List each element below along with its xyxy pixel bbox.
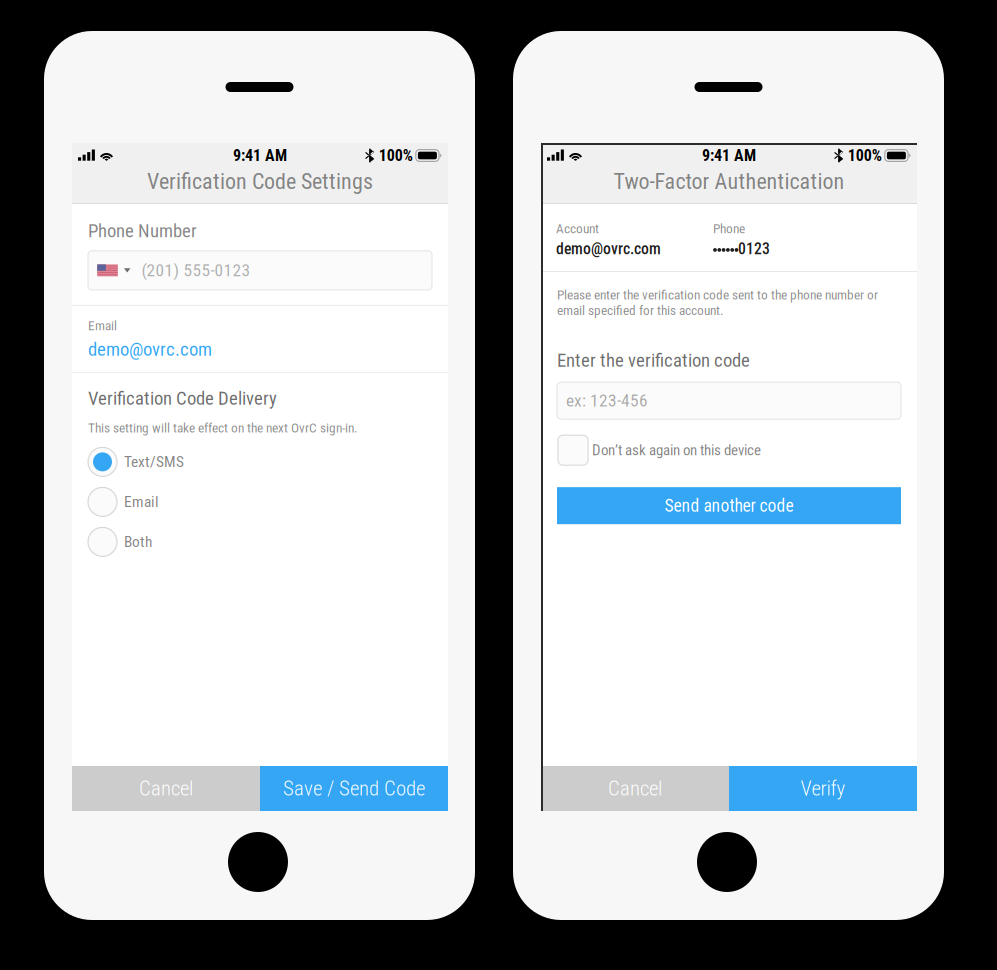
button[interactable]: Both: [88, 522, 432, 562]
staticText: Cancel: [139, 776, 193, 801]
staticText: Save / Send Code: [283, 776, 425, 801]
staticText: 0123: [738, 240, 770, 258]
staticText: Cancel: [608, 776, 662, 801]
staticText: (201) 555-0123: [141, 260, 250, 280]
staticText: Phone: [713, 221, 745, 237]
staticText: Email: [88, 318, 117, 333]
staticText: Verification Code Delivery: [88, 387, 277, 409]
button[interactable]: Don’t ask again on this device: [557, 435, 901, 465]
staticText: 100%: [379, 146, 413, 165]
button[interactable]: Verify: [729, 766, 917, 811]
staticText: Enter the verification code: [557, 349, 750, 371]
staticText: Phone Number: [88, 220, 197, 242]
staticText: ex: 123-456: [566, 390, 648, 411]
staticText: Email: [124, 493, 159, 511]
button[interactable]: Email: [88, 482, 432, 522]
staticText: Two-Factor Authentication: [613, 169, 844, 194]
staticText: Send another code: [664, 495, 793, 516]
staticText: Verification Code Settings: [147, 169, 373, 194]
staticText: Both: [124, 533, 152, 551]
staticText: This setting will take effect on the nex…: [88, 420, 358, 436]
staticText: Text/SMS: [124, 453, 184, 471]
staticText: 100%: [848, 146, 882, 165]
staticText: Account: [556, 221, 599, 237]
staticText: Verify: [800, 776, 845, 801]
staticText: demo@ovrc.com: [556, 240, 661, 258]
button[interactable]: Text/SMS: [88, 442, 432, 482]
staticText: demo@ovrc.com: [88, 338, 212, 360]
button[interactable]: Cancel: [72, 766, 260, 811]
staticText: Don’t ask again on this device: [592, 441, 761, 459]
staticText: 9:41 AM: [702, 146, 756, 165]
staticText: Please enter the verification code sent …: [557, 287, 878, 318]
button[interactable]: Cancel: [541, 766, 729, 811]
button[interactable]: Send another code: [557, 487, 901, 524]
button[interactable]: Save / Send Code: [260, 766, 448, 811]
staticText: 9:41 AM: [233, 146, 287, 165]
